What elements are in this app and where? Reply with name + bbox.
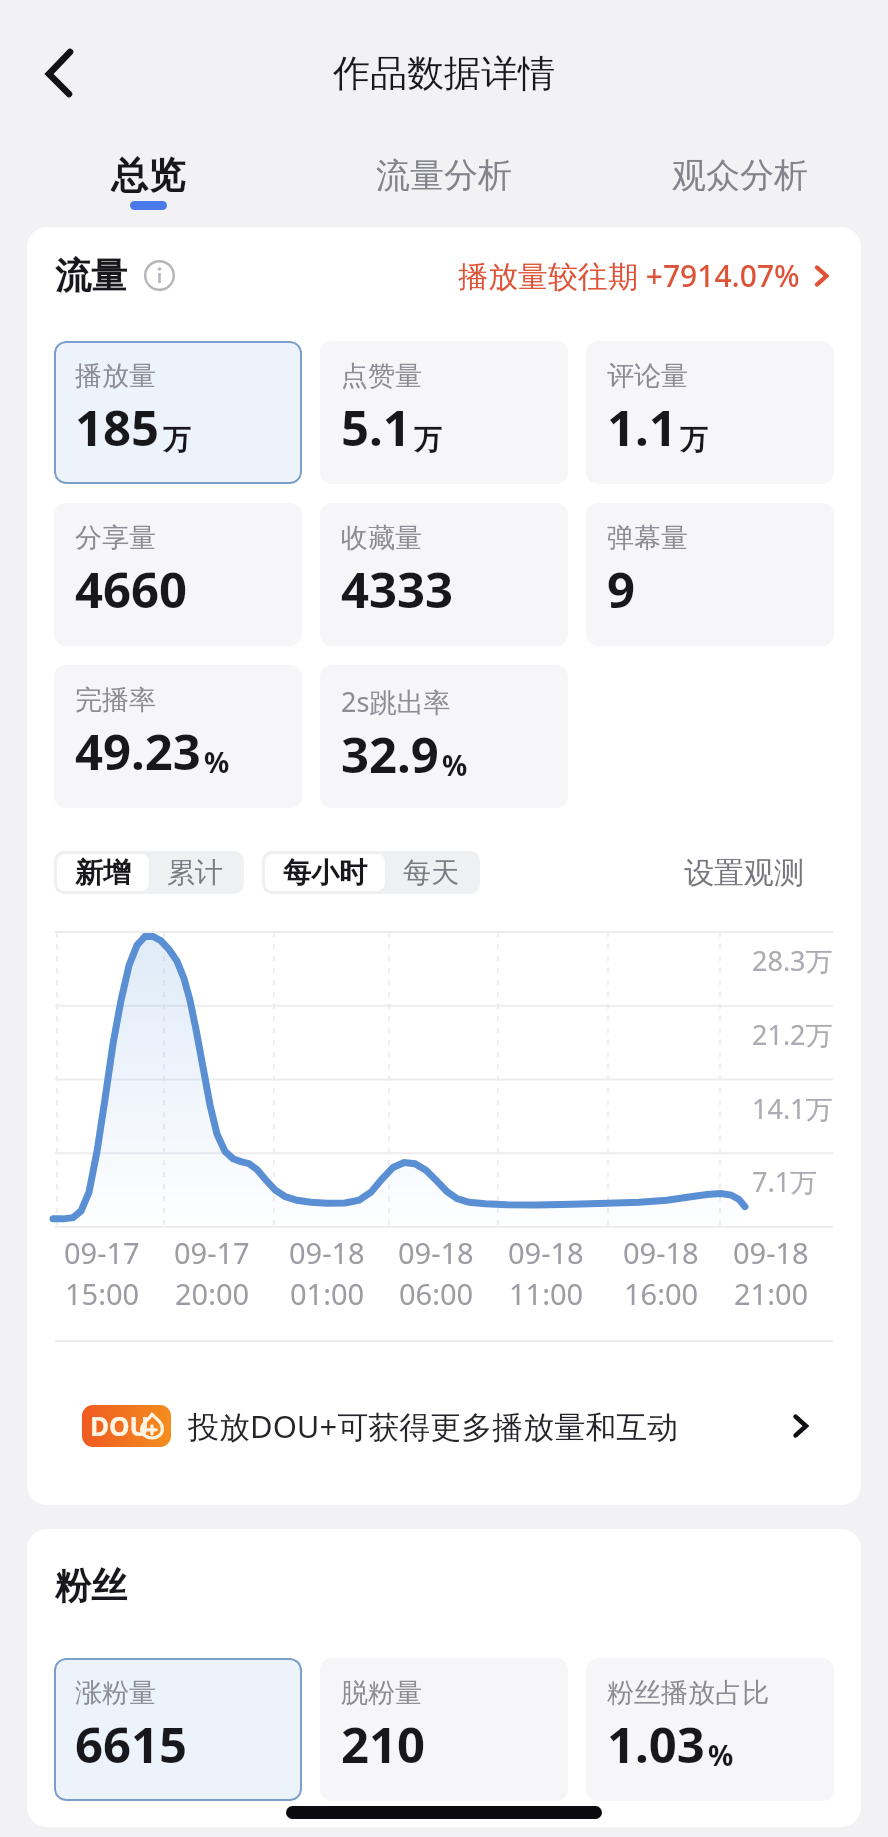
button[interactable]: 弹幕量 xyxy=(586,503,834,646)
staticText: 7.1万 xyxy=(752,1163,818,1200)
staticText: % xyxy=(204,743,230,781)
staticText: 21:00 xyxy=(734,1274,809,1313)
button[interactable]: 设置观测 xyxy=(684,854,834,892)
staticText: 09-17 xyxy=(64,1233,140,1272)
staticText: 9 xyxy=(607,556,636,623)
staticText: 投放DOU+可获得更多播放量和互动 xyxy=(188,1405,679,1447)
staticText: 点赞量 xyxy=(341,359,422,393)
button[interactable]: 脱粉量 xyxy=(320,1658,568,1801)
button[interactable]: Back xyxy=(24,26,94,96)
staticText: 09-18 xyxy=(733,1233,809,1272)
staticText: 210 xyxy=(341,1711,426,1778)
staticText: 11:00 xyxy=(509,1274,584,1313)
staticText: % xyxy=(442,746,468,784)
button[interactable]: Info xyxy=(144,260,175,291)
button[interactable]: 总览 xyxy=(0,133,296,219)
staticText: 14.1万 xyxy=(752,1090,833,1127)
staticText: 作品数据详情 xyxy=(333,50,555,97)
button[interactable]: 累计 xyxy=(149,854,241,891)
staticText: 观众分析 xyxy=(672,154,808,197)
staticText: 16:00 xyxy=(624,1274,699,1313)
button[interactable]: 粉丝播放占比 xyxy=(586,1658,834,1801)
button[interactable]: 观众分析 xyxy=(592,133,888,219)
staticText: 15:00 xyxy=(65,1274,140,1313)
staticText: 09-18 xyxy=(289,1233,365,1272)
button[interactable]: 每天 xyxy=(385,854,477,891)
staticText: % xyxy=(708,1736,734,1774)
staticText: 28.3万 xyxy=(752,942,833,979)
staticText: 185 xyxy=(75,394,160,461)
button[interactable]: 播放量 xyxy=(54,341,302,484)
staticText: 累计 xyxy=(167,855,223,890)
staticText: 6615 xyxy=(75,1711,188,1778)
button[interactable]: 分享量 xyxy=(54,503,302,646)
staticText: 评论量 xyxy=(607,359,688,393)
staticText: 万 xyxy=(414,422,442,457)
staticText: 完播率 xyxy=(75,683,156,717)
button[interactable]: 收藏量 xyxy=(320,503,568,646)
staticText: 4333 xyxy=(341,556,454,623)
button[interactable]: 流量分析 xyxy=(296,133,592,219)
staticText: 09-17 xyxy=(174,1233,250,1272)
staticText: 万 xyxy=(163,422,191,457)
staticText: 21.2万 xyxy=(752,1016,833,1053)
staticText: 5.1 xyxy=(341,394,411,461)
button[interactable]: 评论量 xyxy=(586,341,834,484)
staticText: 20:00 xyxy=(175,1274,250,1313)
button[interactable]: 播放量较往期 +7914.07% xyxy=(458,255,833,296)
button[interactable]: 新增 xyxy=(57,854,149,891)
staticText: 收藏量 xyxy=(341,521,422,555)
staticText: 分享量 xyxy=(75,521,156,555)
staticText: 4660 xyxy=(75,556,188,623)
staticText: 09-18 xyxy=(623,1233,699,1272)
staticText: 粉丝 xyxy=(55,1563,127,1608)
button[interactable]: 点赞量 xyxy=(320,341,568,484)
staticText: 流量分析 xyxy=(376,154,512,197)
staticText: 脱粉量 xyxy=(341,1676,422,1710)
button[interactable]: 涨粉量 xyxy=(54,1658,302,1801)
button[interactable]: 2s跳出率 xyxy=(320,665,568,808)
staticText: 粉丝播放占比 xyxy=(607,1676,769,1710)
staticText: 1.03 xyxy=(607,1711,705,1778)
staticText: 流量 xyxy=(55,253,127,298)
staticText: 06:00 xyxy=(399,1274,474,1313)
staticText: 每天 xyxy=(403,855,459,890)
button[interactable]: 完播率 xyxy=(54,665,302,808)
staticText: 播放量较往期 +7914.07% xyxy=(458,255,800,296)
staticText: 每小时 xyxy=(283,855,367,890)
staticText: 涨粉量 xyxy=(75,1676,156,1710)
staticText: 49.23 xyxy=(75,718,201,785)
staticText: 2s跳出率 xyxy=(341,683,451,720)
staticText: 新增 xyxy=(75,855,131,890)
staticText: 总览 xyxy=(111,152,185,199)
staticText: 1.1 xyxy=(607,394,677,461)
staticText: 32.9 xyxy=(341,721,439,788)
button[interactable]: DOU xyxy=(27,1342,861,1505)
staticText: 01:00 xyxy=(290,1274,365,1313)
staticText: 播放量 xyxy=(75,359,156,393)
staticText: 09-18 xyxy=(508,1233,584,1272)
staticText: 09-18 xyxy=(398,1233,474,1272)
staticText: 设置观测 xyxy=(684,854,804,892)
staticText: 弹幕量 xyxy=(607,521,688,555)
staticText: DOU xyxy=(90,1408,150,1443)
button[interactable]: 每小时 xyxy=(265,854,385,891)
staticText: 万 xyxy=(680,422,708,457)
